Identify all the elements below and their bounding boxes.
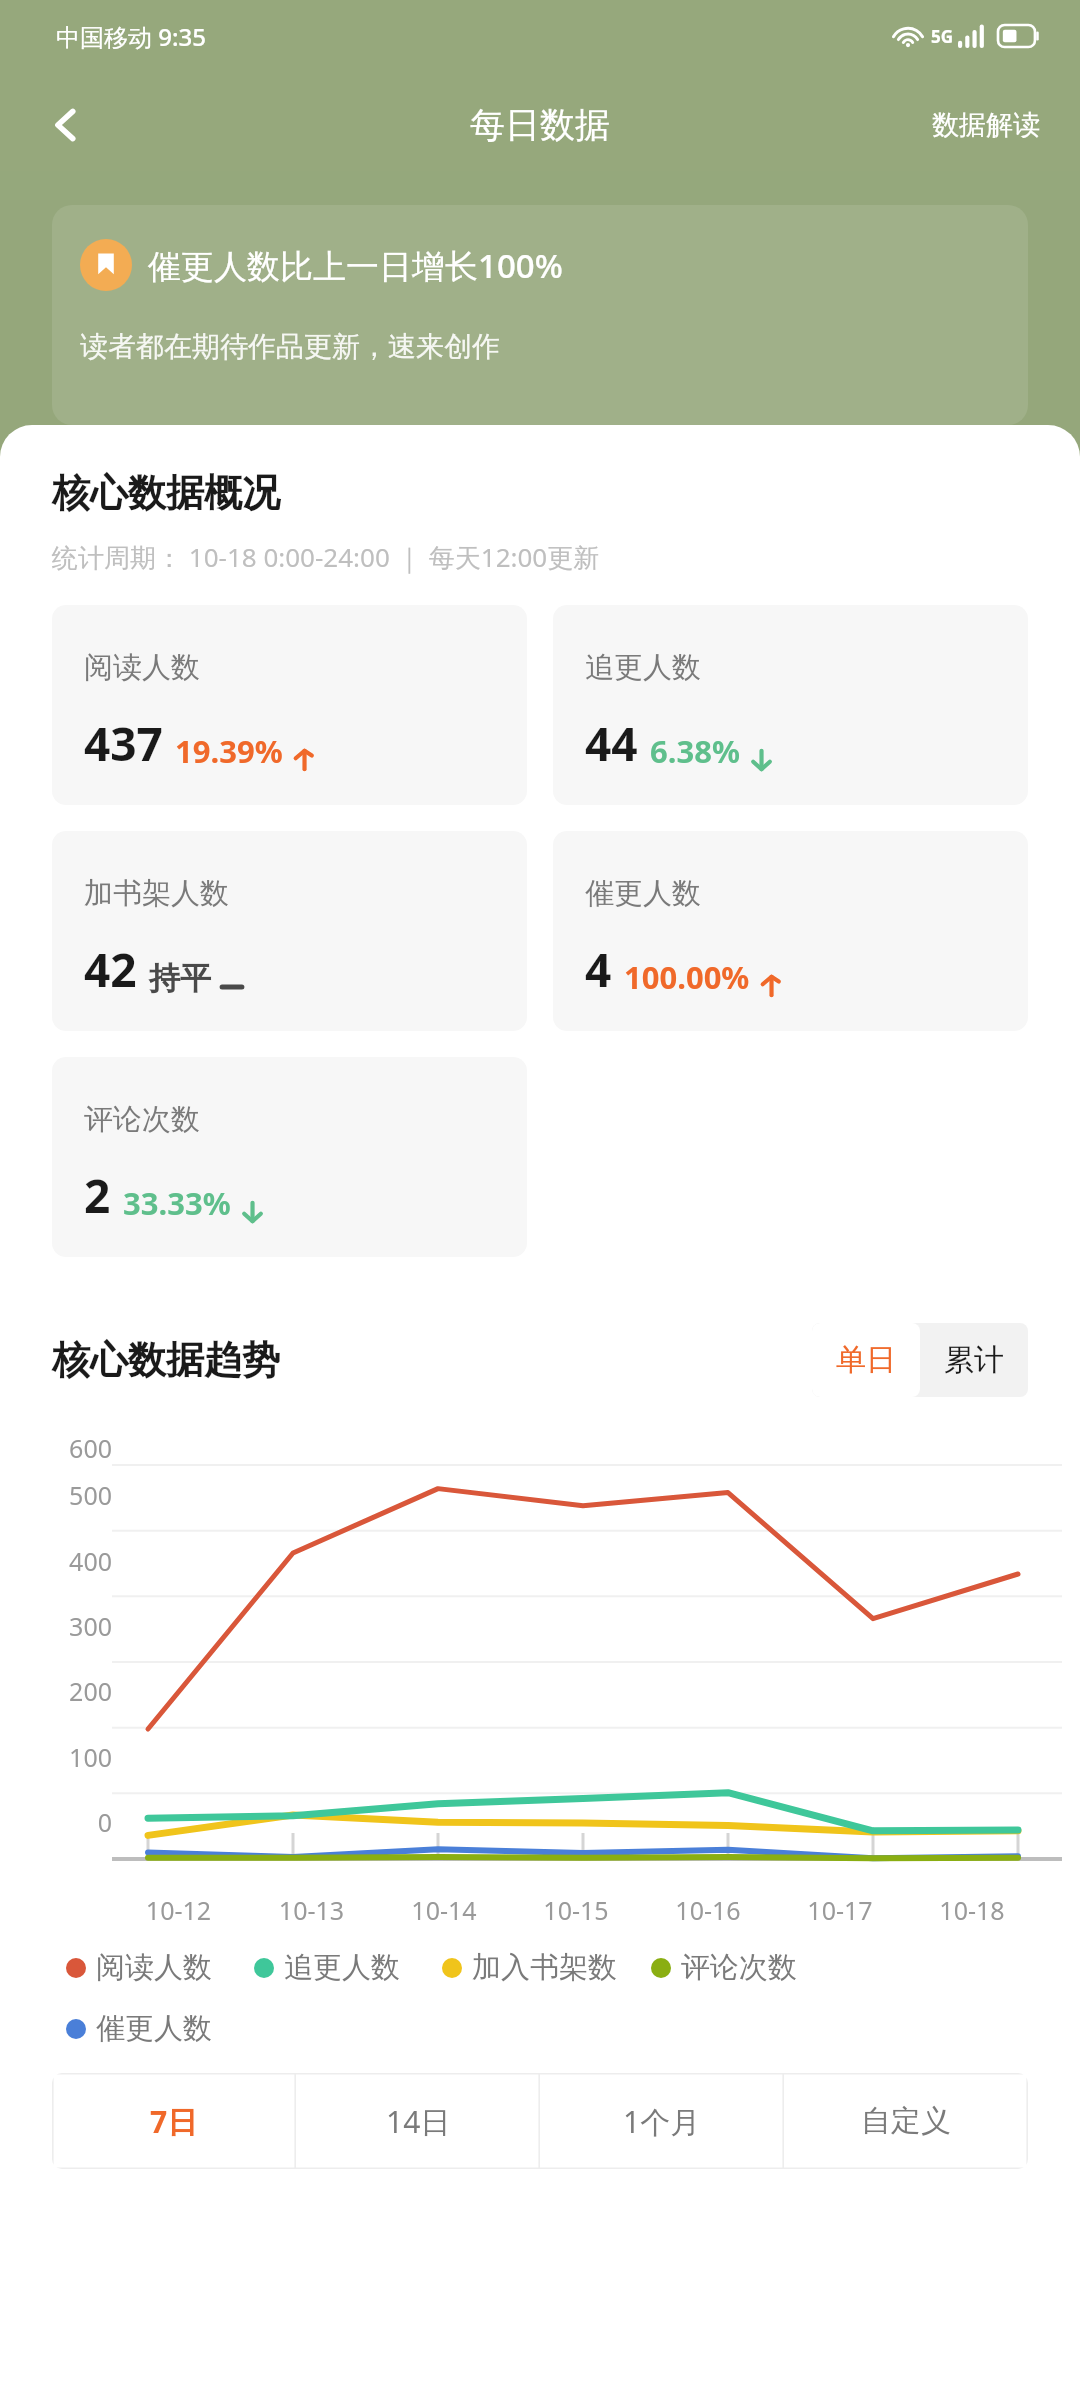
button[interactable]: 加书架人数 bbox=[52, 831, 527, 1031]
staticText: 1个月 bbox=[623, 2101, 701, 2142]
staticText: 100 bbox=[22, 1740, 112, 1774]
staticText: 14日 bbox=[386, 2101, 451, 2142]
staticText: 42 bbox=[84, 938, 137, 1001]
button[interactable]: 1个月 bbox=[540, 2073, 784, 2169]
staticText: 33.33% bbox=[123, 1182, 231, 1224]
staticText: 催更人数 bbox=[585, 875, 701, 912]
staticText: 5G bbox=[931, 25, 954, 48]
button[interactable]: 评论次数 bbox=[52, 1057, 527, 1257]
staticText: 0 bbox=[22, 1805, 112, 1839]
staticText: 自定义 bbox=[861, 2102, 951, 2140]
button[interactable]: 累计 bbox=[920, 1323, 1028, 1397]
button[interactable]: 自定义 bbox=[784, 2073, 1028, 2169]
staticText: 300 bbox=[22, 1609, 112, 1643]
staticText: 10-16 bbox=[642, 1893, 774, 1927]
staticText: 2 bbox=[84, 1164, 111, 1227]
button[interactable]: 催更人数 bbox=[553, 831, 1028, 1031]
staticText: 统计周期： 10-18 0:00-24:00 ｜ 每天12:00更新 bbox=[52, 539, 600, 575]
button[interactable]: 14日 bbox=[296, 2073, 540, 2169]
staticText: 追更人数 bbox=[585, 649, 701, 686]
staticText: 单日 bbox=[836, 1341, 896, 1379]
staticText: 437 bbox=[84, 712, 163, 775]
staticText: 10-15 bbox=[510, 1893, 642, 1927]
staticText: 评论次数 bbox=[84, 1101, 200, 1138]
staticText: 19.39% bbox=[175, 730, 283, 772]
staticText: 数据解读 bbox=[932, 108, 1040, 142]
staticText: 阅读人数 bbox=[96, 1949, 212, 1986]
staticText: 400 bbox=[22, 1544, 112, 1578]
staticText: 加入书架数 bbox=[472, 1949, 617, 1986]
staticText: 读者都在期待作品更新，速来创作 bbox=[80, 329, 500, 364]
staticText: 核心数据趋势 bbox=[52, 1336, 280, 1384]
button[interactable]: 催更人数比上一日增长100% bbox=[52, 205, 1028, 425]
button[interactable]: 评论次数 bbox=[651, 1949, 797, 1986]
staticText: 加书架人数 bbox=[84, 875, 229, 912]
staticText: 持平 bbox=[149, 959, 211, 998]
staticText: 500 bbox=[22, 1478, 112, 1512]
staticText: 每日数据 bbox=[470, 103, 610, 147]
button[interactable]: 追更人数 bbox=[254, 1949, 400, 1986]
button[interactable]: 数据解读 bbox=[926, 98, 1046, 152]
button[interactable]: 阅读人数 bbox=[66, 1949, 212, 1986]
staticText: 200 bbox=[22, 1674, 112, 1708]
staticText: 10-18 bbox=[906, 1893, 1038, 1927]
staticText: 累计 bbox=[944, 1341, 1004, 1379]
staticText: 600 bbox=[22, 1431, 112, 1465]
staticText: 追更人数 bbox=[284, 1949, 400, 1986]
staticText: 核心数据概况 bbox=[52, 469, 280, 517]
staticText: 阅读人数 bbox=[84, 649, 200, 686]
staticText: 44 bbox=[585, 712, 638, 775]
staticText: 10-17 bbox=[774, 1893, 906, 1927]
button[interactable]: Back bbox=[30, 89, 102, 161]
staticText: 催更人数 bbox=[96, 2010, 212, 2047]
staticText: 催更人数比上一日增长100% bbox=[148, 243, 563, 288]
staticText: 评论次数 bbox=[681, 1949, 797, 1986]
staticText: 100.00% bbox=[624, 956, 750, 998]
button[interactable]: 7日 bbox=[52, 2073, 296, 2169]
button[interactable]: 追更人数 bbox=[553, 605, 1028, 805]
staticText: 6.38% bbox=[650, 730, 740, 772]
staticText: 10-14 bbox=[378, 1893, 510, 1927]
staticText: 10-12 bbox=[112, 1893, 245, 1927]
button[interactable]: 催更人数 bbox=[66, 2010, 212, 2047]
button[interactable]: 阅读人数 bbox=[52, 605, 527, 805]
staticText: 4 bbox=[585, 938, 612, 1001]
staticText: 10-13 bbox=[245, 1893, 378, 1927]
staticText: 中国移动 9:35 bbox=[56, 20, 206, 53]
staticText: 7日 bbox=[150, 2101, 198, 2142]
button[interactable]: 加入书架数 bbox=[442, 1949, 617, 1986]
button[interactable]: 单日 bbox=[812, 1323, 920, 1397]
